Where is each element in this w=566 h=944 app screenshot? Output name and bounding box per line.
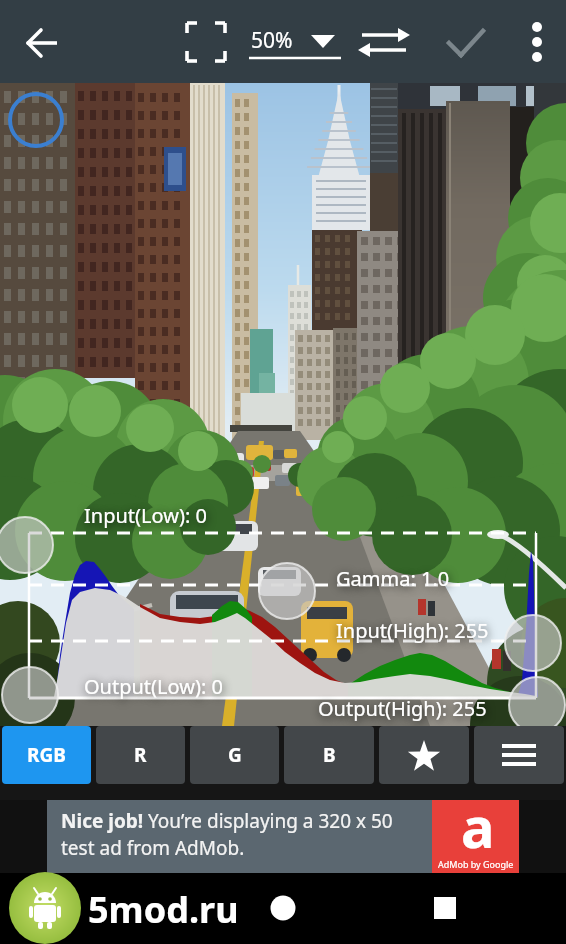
button[interactable]: G xyxy=(190,726,279,784)
staticText: R xyxy=(134,742,147,768)
button[interactable] xyxy=(246,16,344,66)
staticText: Input(High): 255 xyxy=(336,617,489,644)
staticText: Gamma: 1.0 xyxy=(336,565,450,592)
staticText: 50% xyxy=(251,26,293,55)
staticText: RGB xyxy=(27,742,66,768)
button[interactable]: B xyxy=(284,726,374,784)
button[interactable] xyxy=(379,726,469,784)
staticText: AdMob by Google xyxy=(438,858,514,870)
staticText: Input(Low): 0 xyxy=(84,502,207,529)
button[interactable] xyxy=(442,19,490,67)
staticText: Nice job! You’re displaying a 320 x 50 t… xyxy=(61,808,441,861)
staticText: a xyxy=(461,788,495,861)
staticText: 5mod.ru xyxy=(88,885,239,934)
staticText: Output(High): 255 xyxy=(318,695,487,722)
button[interactable] xyxy=(513,19,561,67)
button[interactable] xyxy=(359,19,411,71)
button[interactable]: Nice job! You’re displaying a 320 x 50 t… xyxy=(47,800,519,873)
button[interactable]: RGB xyxy=(2,726,91,784)
button[interactable] xyxy=(182,19,230,67)
button[interactable] xyxy=(421,884,469,932)
staticText: B xyxy=(323,742,336,768)
staticText: G xyxy=(228,742,242,768)
staticText: Output(Low): 0 xyxy=(84,673,223,700)
button[interactable] xyxy=(474,726,564,784)
button[interactable] xyxy=(259,884,307,932)
button[interactable] xyxy=(97,884,145,932)
button[interactable] xyxy=(18,19,66,67)
button[interactable]: R xyxy=(96,726,185,784)
